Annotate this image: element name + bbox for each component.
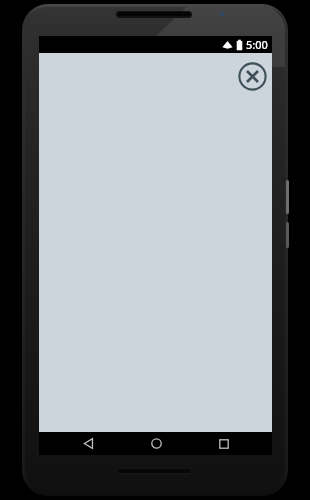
button[interactable]: Home: [136, 432, 176, 455]
button[interactable]: Back: [68, 432, 108, 455]
button[interactable]: Close: [236, 60, 268, 92]
button[interactable]: Recent apps: [204, 432, 244, 455]
staticText: 5:00: [246, 37, 268, 52]
